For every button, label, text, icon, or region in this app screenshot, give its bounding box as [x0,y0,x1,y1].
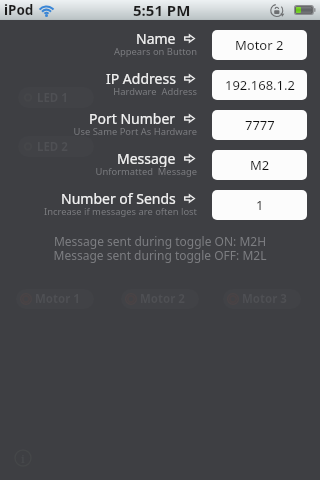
staticText: Message sent during toggle ON: M2H [0,233,320,249]
button[interactable]: 7777 [212,110,307,140]
staticText: Message sent during toggle OFF: M2L [0,247,320,263]
staticText: Motor 2 [140,291,185,307]
staticText: Motor 3 [242,291,287,307]
other: Edit Port Number [184,114,195,123]
staticText: iPod [4,1,34,19]
button[interactable]: Motor 2 [212,30,307,60]
staticText: Increase if messages are often lost [0,205,197,218]
staticText: Motor 1 [35,291,80,307]
button[interactable]: LED 1 [18,87,94,108]
other: Edit IP Address [184,74,195,83]
button[interactable]: Message [0,149,195,167]
staticText: i [21,451,25,466]
staticText: M2 [250,156,270,174]
button[interactable]: Motor 2 [121,289,199,309]
staticText: Use Same Port As Hardware [0,125,197,138]
other: Edit Message [184,154,195,163]
staticText: LED 1 [37,90,68,106]
staticText: Motor 2 [235,36,284,54]
staticText: 5:51 PM [133,0,191,20]
staticText: LED 2 [37,139,68,155]
button[interactable]: LED 2 [18,136,94,157]
staticText: Name [136,29,176,47]
staticText: Number of Sends [61,189,176,207]
button[interactable]: Motor 3 [223,289,301,309]
button[interactable]: Motor 1 [16,289,94,309]
button[interactable]: IP Address [0,69,195,87]
staticText: 7777 [245,116,275,134]
staticText: Hardware Address [0,85,197,98]
button[interactable]: Port Number [0,109,195,127]
button[interactable]: 192.168.1.2 [212,70,307,100]
button[interactable]: 1 [212,190,307,220]
staticText: IP Address [106,69,176,87]
staticText: Appears on Button [0,45,197,58]
button[interactable]: Name [0,29,195,47]
staticText: Port Number [89,109,176,127]
button[interactable]: M2 [212,150,307,180]
staticText: 1 [256,196,264,214]
staticText: 192.168.1.2 [225,76,295,94]
other: Edit Number of Sends [184,194,195,203]
staticText: Message [117,149,176,167]
button[interactable]: Number of Sends [0,189,195,207]
other: Edit Name [184,34,195,43]
staticText: Unformatted Message [0,165,197,178]
